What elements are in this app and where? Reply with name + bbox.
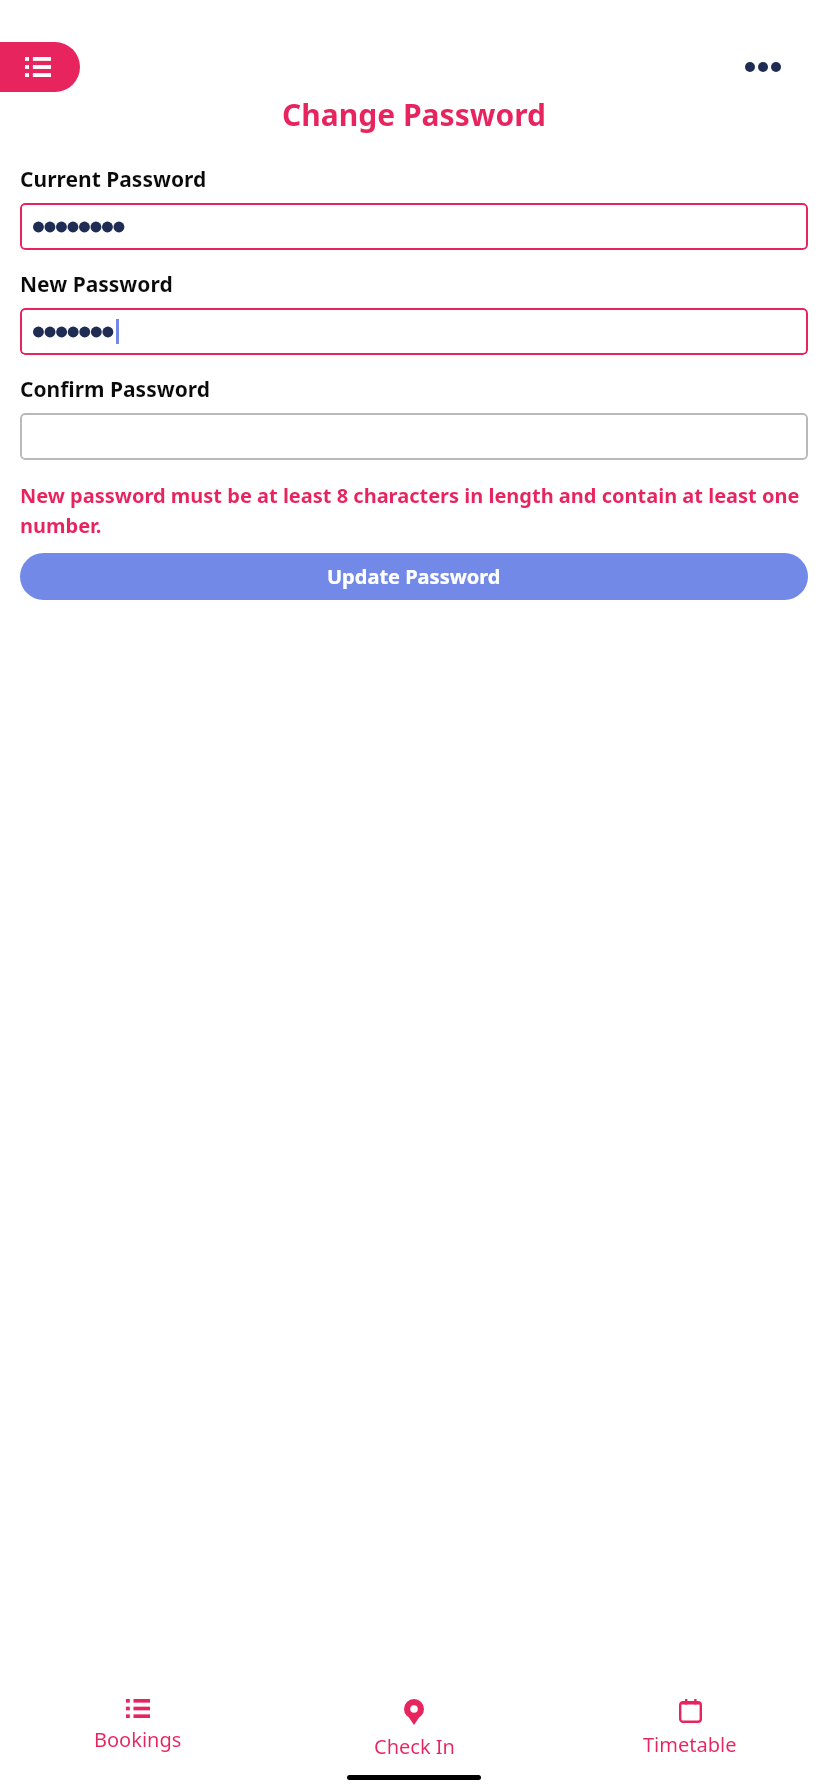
button[interactable]	[20, 413, 808, 460]
staticText: Bookings	[94, 1726, 182, 1753]
staticText: Check In	[374, 1733, 455, 1760]
staticText: Current Password	[20, 165, 207, 194]
button[interactable]: More options	[740, 44, 786, 90]
staticText: Confirm Password	[20, 375, 211, 404]
staticText: Update Password	[327, 563, 501, 590]
button[interactable]: Bookings	[0, 1685, 276, 1753]
button[interactable]	[20, 308, 808, 355]
staticText: Change Password	[0, 94, 828, 135]
button[interactable]: Check In	[276, 1685, 552, 1760]
staticText: New password must be at least 8 characte…	[20, 482, 808, 539]
button[interactable]: Update Password	[20, 553, 808, 600]
staticText: New Password	[20, 270, 173, 299]
staticText: Timetable	[643, 1731, 737, 1758]
button[interactable]	[20, 203, 808, 250]
button[interactable]: Menu	[0, 42, 80, 92]
button[interactable]: Timetable	[552, 1685, 828, 1758]
